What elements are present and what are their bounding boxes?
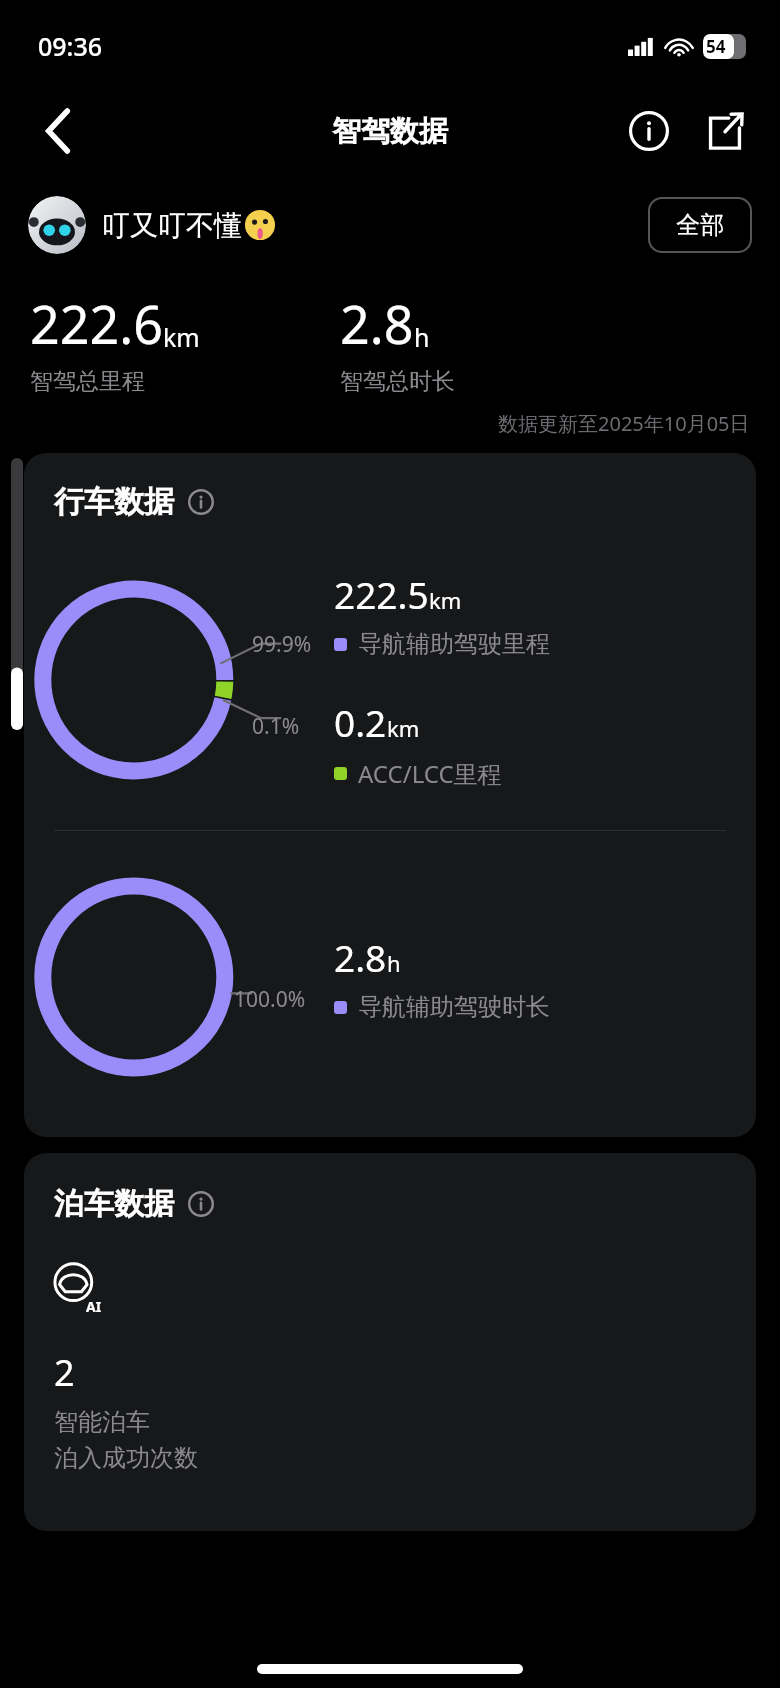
button[interactable]: 泊车数据 [24,1153,756,1531]
staticText: h [387,948,401,978]
staticText: 2.8 [334,932,387,982]
staticText: 54 [706,35,726,58]
staticText: 导航辅助驾驶时长 [358,992,550,1022]
staticText: 2 [54,1348,75,1397]
staticText: AI [86,1297,102,1316]
staticText: 0.2 [334,697,387,747]
button[interactable]: 行车数据 [24,453,756,1137]
staticText: 泊车数据 [54,1185,174,1223]
staticText: 222.5 [334,569,429,619]
staticText: 行车数据 [54,483,174,521]
staticText: 99.9% [252,630,312,659]
staticText: 数据更新至2025年10月05日 [498,410,750,437]
button[interactable]: 全部 [648,197,752,253]
staticText: km [163,320,200,354]
staticText: km [387,713,420,743]
staticText: 09:36 [38,29,103,63]
staticText: 泊入成功次数 [54,1443,198,1473]
staticText: km [429,585,462,615]
staticText: 叮又叮不懂 [102,208,242,243]
staticText: 222.6 [30,288,163,359]
button[interactable]: Info [186,1189,216,1219]
staticText: 100.0% [234,985,306,1014]
staticText: 导航辅助驾驶里程 [358,629,550,659]
button[interactable]: Back [28,100,90,162]
staticText: 智驾数据 [332,113,448,150]
staticText: h [414,320,430,354]
staticText: 2.8 [340,288,414,359]
staticText: 智驾总时长 [340,367,455,396]
staticText: 0.1% [252,712,300,741]
staticText: 全部 [676,210,724,240]
staticText: 智驾总里程 [30,367,145,396]
staticText: ACC/LCC里程 [358,757,502,790]
button[interactable]: Share [696,102,754,160]
button[interactable]: Info [620,102,678,160]
staticText: 智能泊车 [54,1407,150,1437]
button[interactable]: Info [186,487,216,517]
